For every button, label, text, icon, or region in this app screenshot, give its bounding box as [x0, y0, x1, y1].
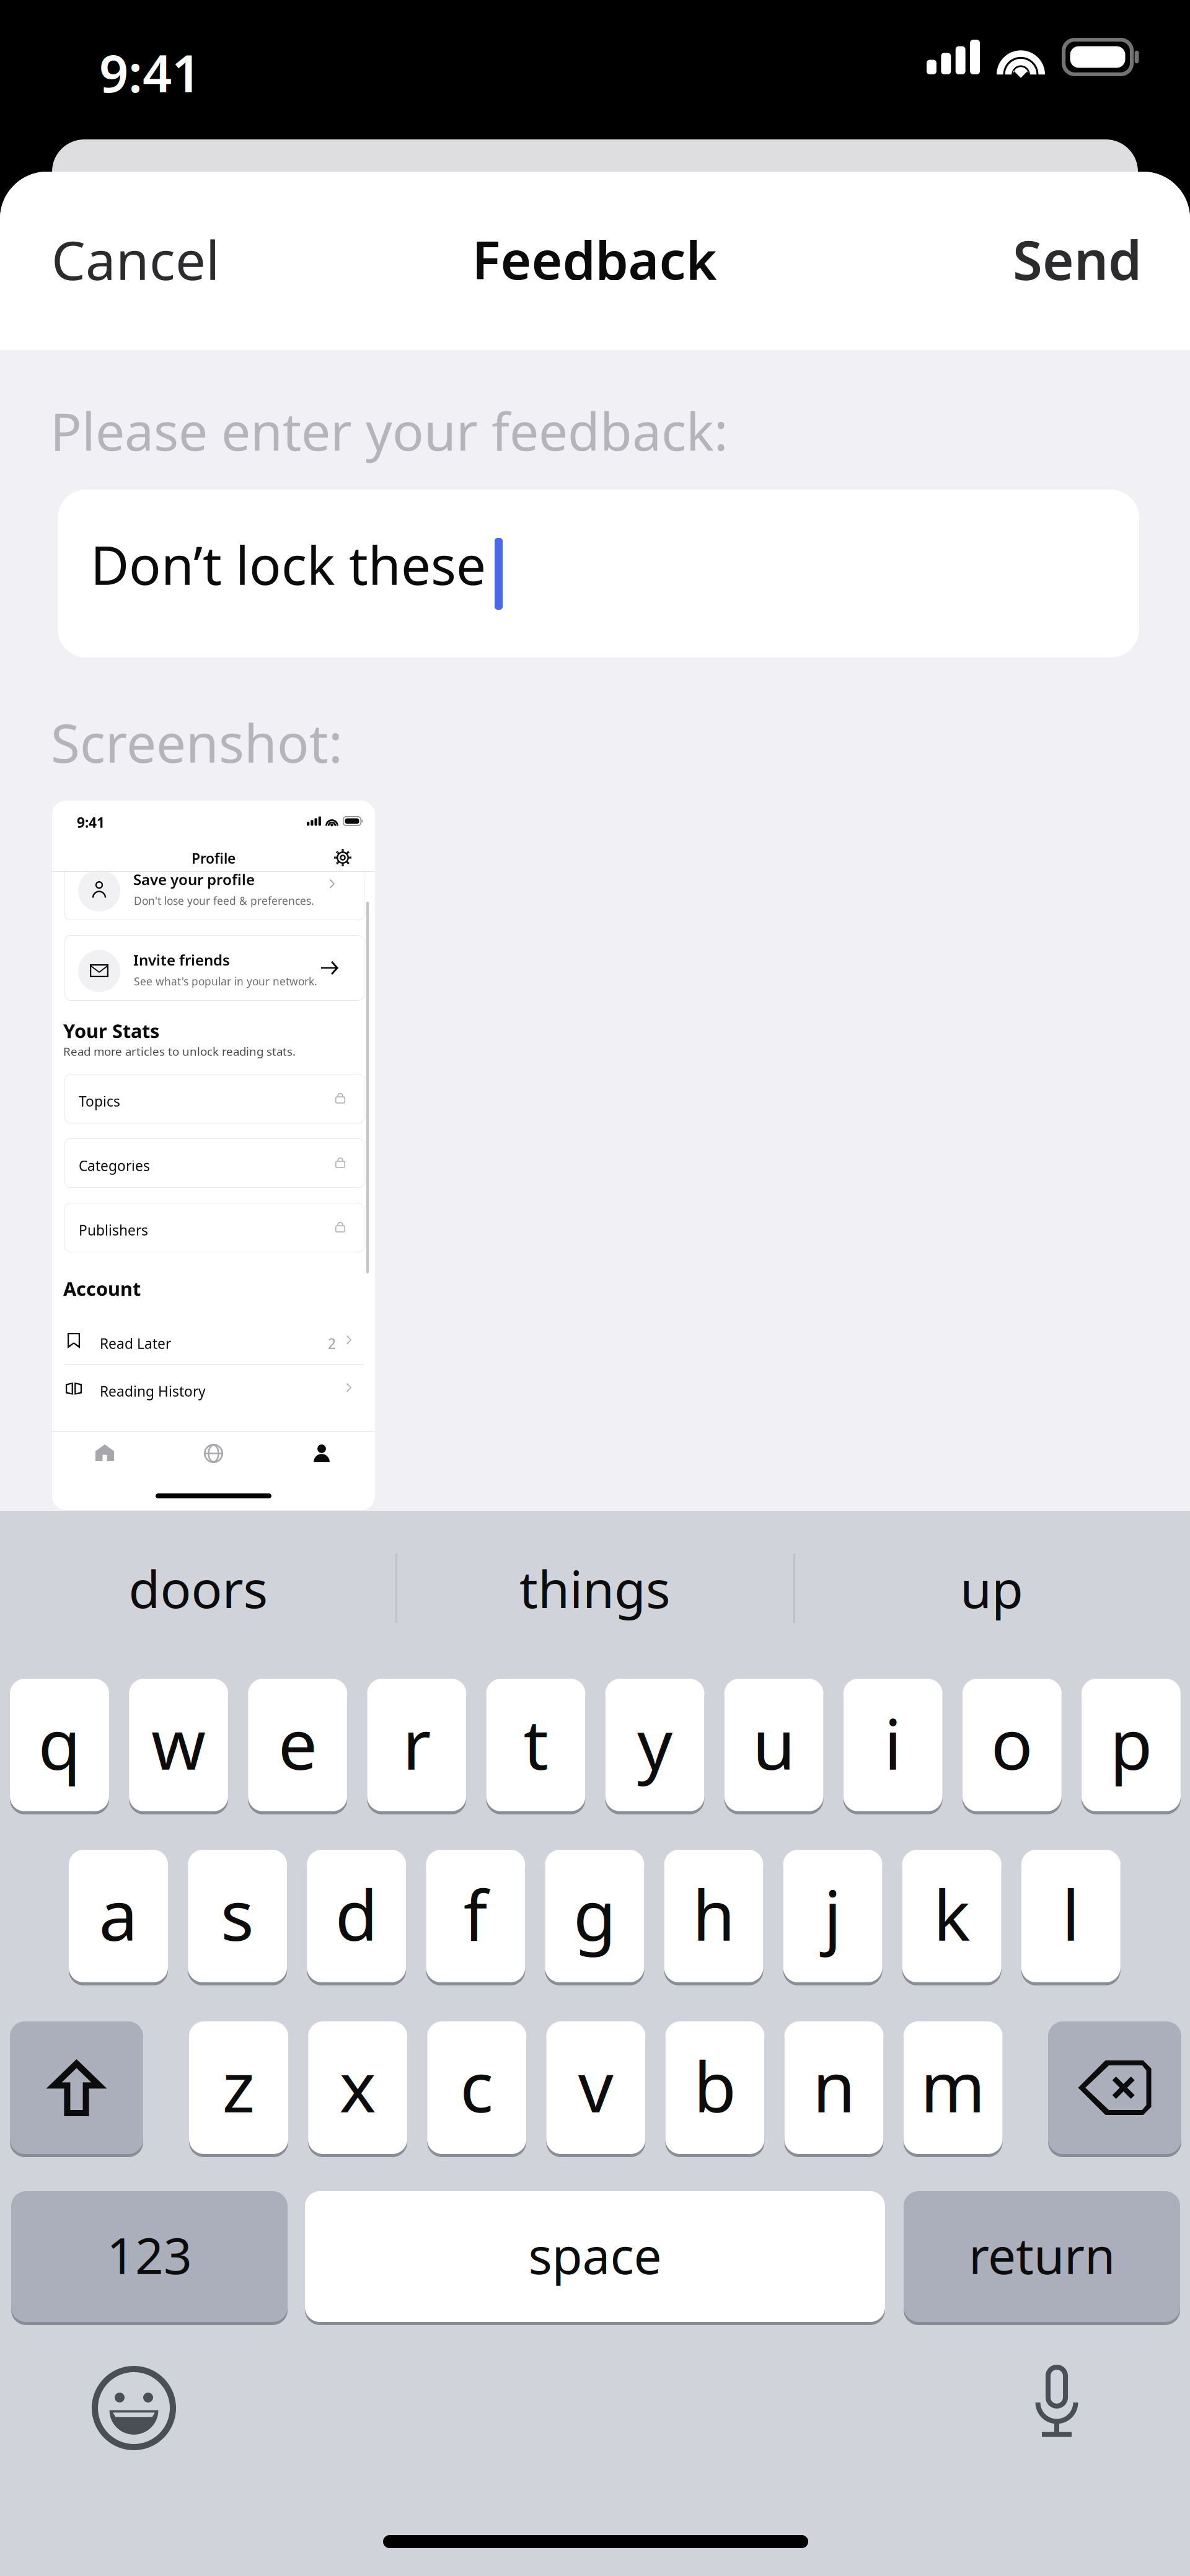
button[interactable]: o: [962, 1679, 1062, 1815]
button[interactable]: b: [665, 2021, 764, 2158]
button[interactable]: l: [1021, 1850, 1120, 1986]
button[interactable]: Explore: [204, 1444, 223, 1463]
button[interactable]: d: [307, 1850, 406, 1986]
staticText: k: [933, 1868, 970, 1960]
staticText: doors: [129, 1554, 268, 1622]
button[interactable]: t: [486, 1679, 585, 1815]
button[interactable]: Send: [0, 172, 186, 265]
staticText: o: [991, 1697, 1033, 1789]
button[interactable]: Invite friends: [64, 935, 364, 1001]
staticText: z: [222, 2039, 255, 2131]
button[interactable]: s: [188, 1850, 287, 1986]
staticText: 9:41: [77, 813, 105, 832]
button[interactable]: a: [69, 1850, 168, 1986]
staticText: s: [221, 1868, 254, 1960]
staticText: m: [920, 2039, 986, 2131]
staticText: r: [402, 1697, 431, 1789]
button[interactable]: Feedback: [0, 172, 310, 265]
button[interactable]: Shift: [10, 2021, 143, 2158]
staticText: Your Stats: [63, 1018, 159, 1043]
staticText: Screenshot:: [51, 707, 343, 777]
button[interactable]: Profile: [312, 1444, 331, 1461]
staticText: Cancel: [51, 223, 219, 295]
button[interactable]: Cancel: [0, 172, 186, 265]
button[interactable]: Publishers: [64, 1203, 364, 1252]
staticText: w: [151, 1697, 206, 1789]
staticText: y: [637, 1697, 672, 1789]
button[interactable]: h: [664, 1850, 763, 1986]
staticText: Categories: [79, 1156, 150, 1175]
button[interactable]: m: [903, 2021, 1003, 2158]
staticText: Save your profile: [133, 869, 255, 889]
staticText: b: [693, 2039, 736, 2131]
button[interactable]: Delete: [1048, 2021, 1181, 2158]
staticText: Read more articles to unlock reading sta…: [63, 1044, 296, 1059]
staticText: q: [38, 1697, 81, 1789]
button[interactable]: i: [843, 1679, 943, 1815]
staticText: Please enter your feedback:: [50, 396, 728, 465]
button[interactable]: Settings: [52, 801, 69, 818]
button[interactable]: w: [129, 1679, 228, 1815]
button[interactable]: space: [305, 2191, 885, 2326]
staticText: 2: [328, 1334, 336, 1353]
staticText: n: [813, 2039, 855, 2131]
staticText: t: [523, 1697, 548, 1789]
button[interactable]: n: [784, 2021, 884, 2158]
staticText: i: [884, 1697, 902, 1789]
button[interactable]: f: [426, 1850, 525, 1986]
button[interactable]: x: [308, 2021, 407, 2158]
button[interactable]: y: [605, 1679, 704, 1815]
staticText: v: [578, 2039, 613, 2131]
button[interactable]: q: [10, 1679, 109, 1815]
staticText: Don't lose your feed & preferences.: [134, 894, 314, 908]
button[interactable]: u: [724, 1679, 823, 1815]
button[interactable]: things: [397, 1514, 793, 1663]
button[interactable]: Home: [95, 1444, 114, 1461]
staticText: 9:41: [99, 38, 201, 106]
staticText: h: [692, 1868, 735, 1960]
staticText: x: [339, 2039, 376, 2131]
button[interactable]: c: [427, 2021, 526, 2158]
button[interactable]: return: [904, 2191, 1180, 2326]
staticText: Reading History: [100, 1382, 206, 1401]
staticText: a: [99, 1868, 138, 1960]
button[interactable]: Reading History: [64, 1367, 364, 1412]
button[interactable]: v: [546, 2021, 645, 2158]
button[interactable]: k: [902, 1850, 1001, 1986]
button[interactable]: 123: [11, 2191, 288, 2326]
staticText: g: [573, 1868, 616, 1960]
staticText: Topics: [79, 1092, 120, 1111]
button[interactable]: g: [545, 1850, 644, 1986]
button[interactable]: e: [248, 1679, 347, 1815]
button[interactable]: j: [783, 1850, 882, 1986]
staticText: See what's popular in your network.: [134, 974, 317, 988]
staticText: Don’t lock these: [90, 529, 486, 599]
button[interactable]: doors: [0, 1514, 397, 1663]
button[interactable]: p: [1081, 1679, 1181, 1815]
button[interactable]: Topics: [64, 1074, 364, 1123]
staticText: Read Later: [100, 1334, 171, 1353]
staticText: up: [960, 1554, 1023, 1622]
staticText: space: [528, 2222, 662, 2288]
staticText: Invite friends: [133, 950, 230, 970]
staticText: things: [519, 1554, 671, 1622]
staticText: return: [969, 2222, 1115, 2288]
staticText: c: [460, 2039, 493, 2131]
staticText: u: [752, 1697, 795, 1789]
staticText: e: [278, 1697, 317, 1789]
staticText: Publishers: [79, 1221, 148, 1239]
button[interactable]: Emoji keyboard: [92, 2366, 176, 2450]
button[interactable]: up: [793, 1514, 1190, 1663]
button[interactable]: z: [189, 2021, 288, 2158]
staticText: Feedback: [472, 224, 717, 294]
button[interactable]: Categories: [64, 1138, 364, 1188]
staticText: p: [1110, 1697, 1152, 1789]
staticText: Account: [63, 1276, 141, 1301]
button[interactable]: Read Later: [64, 1319, 364, 1364]
button[interactable]: Dictation: [1031, 2365, 1082, 2440]
staticText: d: [335, 1868, 378, 1960]
staticText: Send: [1013, 223, 1142, 295]
button[interactable]: Save your profile: [64, 855, 364, 920]
button[interactable]: r: [367, 1679, 466, 1815]
staticText: j: [824, 1868, 842, 1960]
